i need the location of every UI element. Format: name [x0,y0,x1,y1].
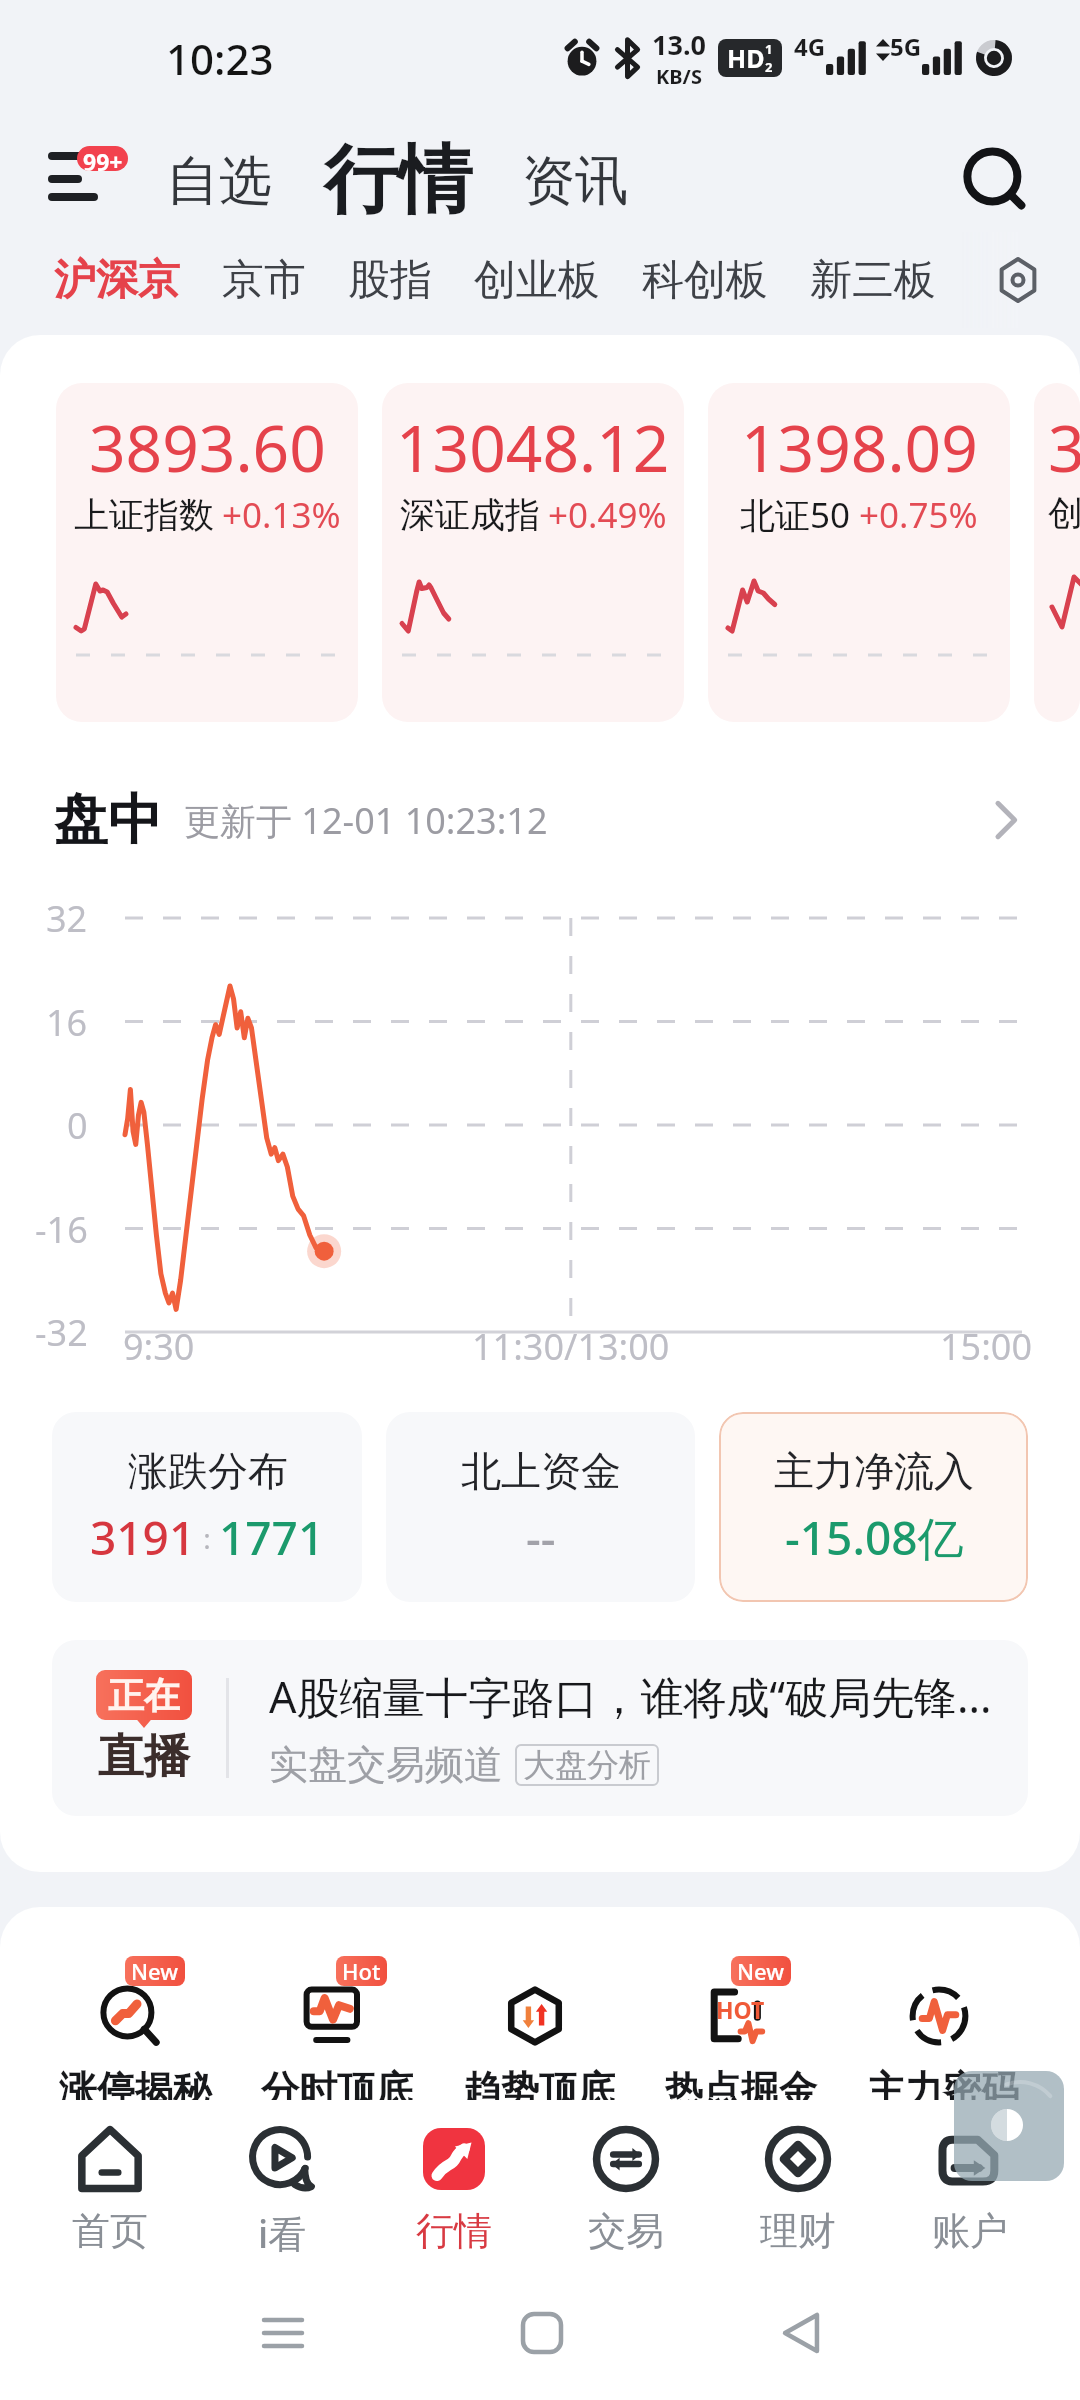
staticText: -16 [35,1205,88,1254]
staticText: KB/S [656,63,702,90]
button[interactable]: 新三板 [810,242,978,319]
button[interactable]: Menu [38,136,146,220]
button[interactable]: 行情 [318,128,478,233]
staticText: 账户 [932,2207,1008,2255]
staticText: 创业板 [474,254,600,307]
staticText: 直播 [98,1728,190,1786]
staticText: 主力净流入 [774,1446,974,1496]
staticText: 5G [890,30,922,63]
staticText: 热点掘金 [665,2066,817,2114]
button[interactable]: 主力净流入 [719,1412,1028,1602]
staticText: New [737,1956,785,1986]
staticText: -- [526,1506,556,1569]
button[interactable]: 交易 [540,2100,712,2255]
staticText: 北证50 [740,491,851,539]
button[interactable]: Back [751,2283,851,2383]
button[interactable]: Home [492,2283,592,2383]
button[interactable]: Recents [233,2283,333,2383]
staticText: 深证成指 [400,493,540,537]
staticText: 股指 [348,254,432,307]
staticText: 15:00 [940,1322,1033,1371]
staticText: 3893.60 [89,404,326,491]
staticText: 主力密码 [867,2066,1019,2114]
button[interactable]: 股指 [348,242,474,319]
staticText: 32 [46,894,88,943]
button[interactable]: 主力密码 [867,1948,1019,2114]
staticText: 13048.12 [396,404,670,491]
staticText: +0.49% [548,491,667,539]
staticText: 1 [765,40,773,58]
button[interactable]: 正在 [52,1640,1028,1816]
staticText: 涨停揭秘 [59,2066,211,2114]
staticText: 0 [67,1101,88,1150]
staticText: 2 [765,58,773,76]
staticText: +0.13% [222,491,341,539]
staticText: 更新于 12-01 10:23:12 [184,796,548,845]
staticText: 资讯 [522,148,628,215]
staticText: 大盘分析 [523,1745,651,1785]
staticText: i看 [258,2207,307,2259]
button[interactable]: 沪深京 [54,242,222,319]
staticText: 新三板 [810,254,936,307]
staticText: 北上资金 [461,1446,621,1496]
button[interactable]: 账户 [884,2100,1056,2255]
staticText: -32 [35,1308,88,1357]
staticText: 10:23 [166,30,274,87]
staticText: : [196,1519,219,1557]
button[interactable]: 理财 [712,2100,884,2255]
button[interactable]: Brightness [954,2071,1064,2181]
staticText: Hot [342,1956,381,1986]
button[interactable]: 13048.12 [382,383,684,722]
button[interactable]: i看 [196,2100,368,2259]
staticText: 9:30 [123,1322,195,1371]
staticText: 涨跌分布 [128,1446,288,1496]
staticText: 分时顶底 [261,2066,413,2114]
staticText: 自选 [166,148,272,215]
staticText: 1398.09 [741,404,978,491]
staticText: 首页 [72,2207,148,2255]
staticText: 13.0 [652,26,706,63]
button[interactable]: 资讯 [516,140,634,223]
staticText: +0.75% [859,491,978,539]
staticText: HD [727,41,765,75]
button[interactable]: New [59,1948,211,2114]
staticText: 16 [46,998,88,1047]
staticText: 理财 [760,2207,836,2255]
button[interactable]: 自选 [160,140,278,223]
staticText: New [131,1956,179,1986]
staticText: HOT [716,1994,765,2025]
button[interactable]: 趋势顶底 [463,1948,615,2114]
button[interactable]: 首页 [24,2100,196,2255]
staticText: 趋势顶底 [463,2066,615,2114]
staticText: 上证指数 [74,493,214,537]
button[interactable]: Search [942,128,1052,238]
button[interactable]: 行情 [368,2100,540,2255]
staticText: 正在 [108,1673,180,1718]
staticText: 科创板 [642,254,768,307]
button[interactable]: 1398.09 [708,383,1010,722]
staticText: 99+ [83,146,123,171]
staticText: 交易 [588,2207,664,2255]
staticText: 4G [794,30,826,63]
button[interactable]: 创业板 [474,242,642,319]
button[interactable]: More categories [980,242,1056,318]
staticText: 沪深京 [54,254,180,307]
staticText: 3 [1048,404,1080,491]
staticText: -15.08亿 [785,1506,964,1569]
button[interactable]: Open detail [970,785,1040,855]
staticText: 盘中 [54,786,162,854]
staticText: A股缩量十字路口，谁将成“破局先锋... [269,1667,992,1726]
button[interactable]: 3 [1034,383,1080,722]
button[interactable]: 科创板 [642,242,810,319]
button[interactable]: 北上资金 [386,1412,695,1602]
staticText: 1771 [219,1506,325,1569]
staticText: 创 [1048,491,1080,535]
staticText: 实盘交易频道 [269,1740,503,1789]
button[interactable]: Hot [261,1948,413,2114]
button[interactable]: HOT [665,1948,817,2114]
staticText: 京市 [222,254,306,307]
button[interactable]: 京市 [222,242,348,319]
staticText: 行情 [324,134,472,227]
button[interactable]: 3893.60 [56,383,358,722]
button[interactable]: 涨跌分布 [52,1412,362,1602]
